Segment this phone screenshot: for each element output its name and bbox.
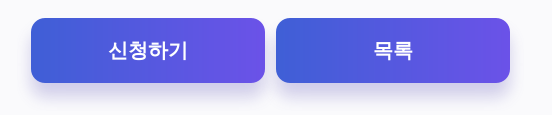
staticText: 목록 bbox=[373, 38, 413, 63]
button[interactable]: 신청하기 bbox=[31, 18, 265, 83]
button[interactable]: 목록 bbox=[276, 18, 510, 83]
staticText: 신청하기 bbox=[108, 38, 188, 63]
